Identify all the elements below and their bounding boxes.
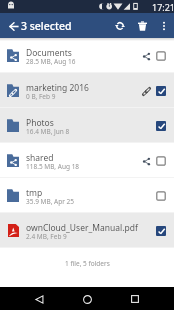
staticText: 28.5 MB, Aug 16 <box>26 57 76 66</box>
button[interactable]: Recent apps <box>125 289 145 309</box>
button[interactable]: shared <box>0 143 174 178</box>
button[interactable]: marketing 2016 <box>0 73 174 108</box>
staticText: 118.5 MB, Aug 18 <box>26 162 80 171</box>
staticText: Documents <box>26 47 72 59</box>
button[interactable]: Sync <box>110 16 129 35</box>
button[interactable]: Photos <box>0 108 174 143</box>
button[interactable]: Shared by link <box>139 84 153 98</box>
staticText: ownCloud_User_Manual.pdf <box>26 222 138 234</box>
button[interactable]: Back <box>29 289 49 309</box>
staticText: marketing 2016 <box>26 82 89 94</box>
button[interactable]: Select item <box>154 189 168 203</box>
staticText: 17:21 <box>152 1 174 13</box>
button[interactable]: Back <box>4 16 24 36</box>
button[interactable]: Select item <box>154 224 168 238</box>
button[interactable]: Documents <box>0 38 174 73</box>
button[interactable]: Shared with others <box>139 154 153 168</box>
staticText: 0 B, Feb 9 <box>26 92 56 101</box>
button[interactable]: More options <box>155 17 172 34</box>
staticText: tmp <box>26 187 43 199</box>
button[interactable]: Home <box>77 289 97 309</box>
button[interactable]: Select item <box>154 84 168 98</box>
staticText: shared <box>26 152 54 164</box>
staticText: 35.9 MB, Apr 25 <box>26 197 75 206</box>
button[interactable]: tmp <box>0 178 174 213</box>
staticText: 3 selected <box>21 19 72 33</box>
button[interactable]: Select item <box>154 119 168 133</box>
staticText: Photos <box>26 117 54 129</box>
button[interactable]: Delete <box>133 16 152 35</box>
button[interactable]: Select item <box>154 49 168 63</box>
button[interactable]: Select item <box>154 154 168 168</box>
staticText: 16.4 MB, Jun 8 <box>26 127 70 136</box>
button[interactable]: Shared with others <box>139 49 153 63</box>
button[interactable]: ownCloud_User_Manual.pdf <box>0 213 174 248</box>
staticText: 1 file, 5 folders <box>65 259 110 268</box>
staticText: 2.4 MB, Feb 9 <box>26 232 67 241</box>
